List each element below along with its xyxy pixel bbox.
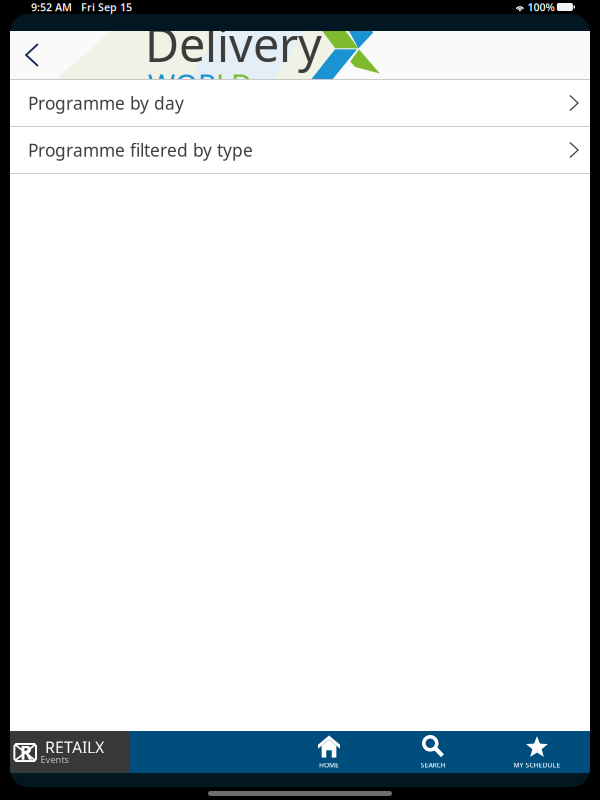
button[interactable]: MY SCHEDULE (489, 731, 585, 773)
staticText: Programme by day (28, 91, 184, 114)
button[interactable]: Back (10, 31, 54, 79)
button[interactable]: RetailX Events (10, 731, 130, 773)
staticText: Events (40, 753, 68, 766)
staticText: 100% (524, 0, 554, 14)
button[interactable]: HOME (281, 731, 377, 773)
staticText: Programme filtered by type (28, 138, 253, 161)
staticText: R (20, 740, 32, 765)
button[interactable]: Programme filtered by type (10, 127, 590, 173)
button[interactable]: Programme by day (10, 80, 590, 126)
staticText: Delivery (145, 13, 322, 75)
staticText: LD (216, 64, 252, 103)
staticText: HOME (319, 761, 339, 769)
button[interactable]: SEARCH (385, 731, 481, 773)
staticText: WOR (148, 64, 216, 103)
staticText: 9:52 AM Fri Sep 15 (31, 0, 132, 14)
staticText: RETAILX (45, 737, 104, 758)
staticText: MY SCHEDULE (513, 761, 560, 769)
staticText: SEARCH (420, 761, 445, 769)
